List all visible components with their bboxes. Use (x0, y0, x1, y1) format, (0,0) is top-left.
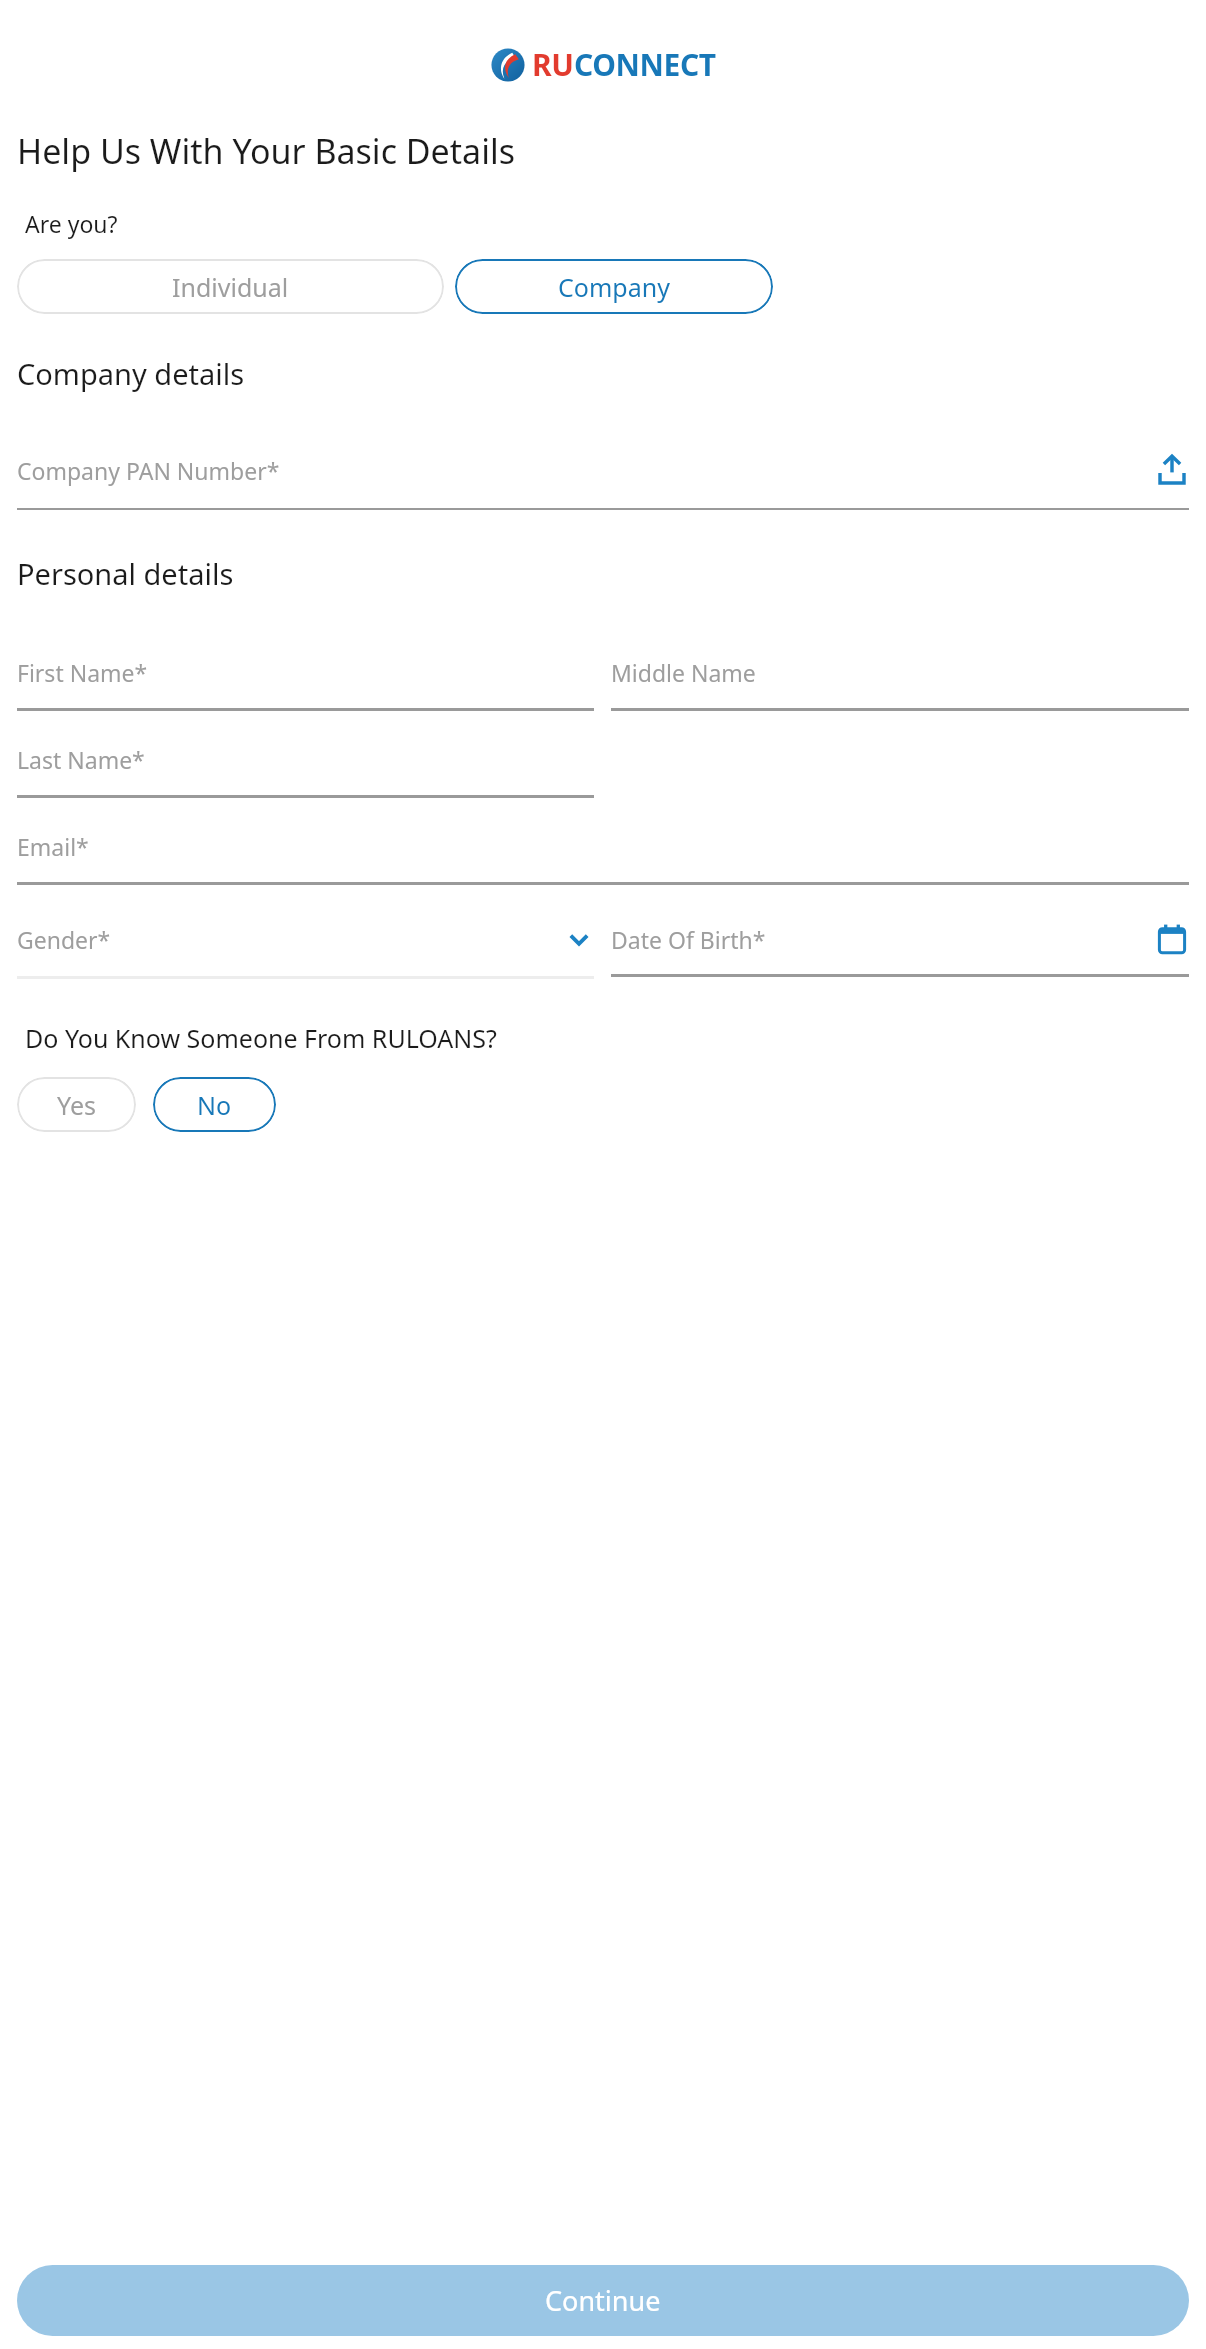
button[interactable]: Individual (17, 259, 444, 314)
staticText: Middle Name (611, 657, 756, 688)
staticText: CONNECT (574, 44, 716, 85)
staticText: Company details (17, 354, 245, 393)
button[interactable]: Gender* (17, 917, 594, 961)
staticText: Company PAN Number* (17, 455, 280, 486)
staticText: Help Us With Your Basic Details (17, 128, 515, 174)
staticText: Company (558, 270, 670, 304)
staticText: Date Of Birth* (611, 924, 766, 955)
staticText: Yes (57, 1088, 96, 1122)
other: Select gender (564, 924, 594, 954)
staticText: RU (532, 44, 574, 85)
other: Pick date of birth (1155, 922, 1189, 956)
button[interactable]: First Name* (17, 651, 594, 693)
button[interactable]: Yes (17, 1077, 136, 1132)
staticText: Are you? (25, 208, 118, 239)
staticText: Gender* (17, 924, 111, 955)
button[interactable]: Continue (17, 2265, 1189, 2336)
button[interactable]: Email* (17, 825, 1189, 867)
staticText: Email* (17, 831, 89, 862)
button[interactable]: Middle Name (611, 651, 1189, 693)
staticText: Continue (545, 2282, 661, 2319)
button[interactable]: Date Of Birth* (611, 917, 1189, 961)
staticText: Individual (172, 270, 289, 304)
button[interactable]: Last Name* (17, 738, 594, 780)
staticText: No (197, 1088, 232, 1122)
staticText: First Name* (17, 657, 148, 688)
staticText: Last Name* (17, 744, 145, 775)
button[interactable]: No (153, 1077, 276, 1132)
staticText: Do You Know Someone From RULOANS? (25, 1021, 497, 1055)
button[interactable]: Company (455, 259, 773, 314)
button[interactable]: Upload PAN document (1155, 453, 1189, 487)
staticText: Personal details (17, 554, 234, 593)
